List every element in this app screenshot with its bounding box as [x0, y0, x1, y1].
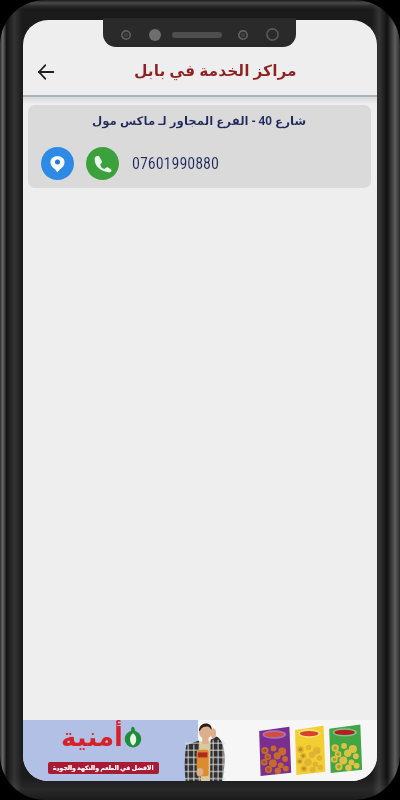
staticText: أمنية [61, 722, 124, 752]
button[interactable]: Call this number [86, 147, 119, 180]
staticText: شارع 40 - الفرع المجاور لـ ماكس مول [91, 112, 306, 128]
button[interactable]: شارع 40 - الفرع المجاور لـ ماكس مول [28, 105, 371, 188]
staticText: الافضل في الطعم والنكهة والجودة [53, 764, 154, 772]
button[interactable]: Back [28, 54, 64, 90]
staticText: 07601990880 [132, 154, 219, 173]
button[interactable]: Advertisement [23, 720, 377, 781]
button[interactable]: Show location on map [41, 147, 74, 180]
staticText: مراكز الخدمة في بابل [134, 59, 297, 80]
